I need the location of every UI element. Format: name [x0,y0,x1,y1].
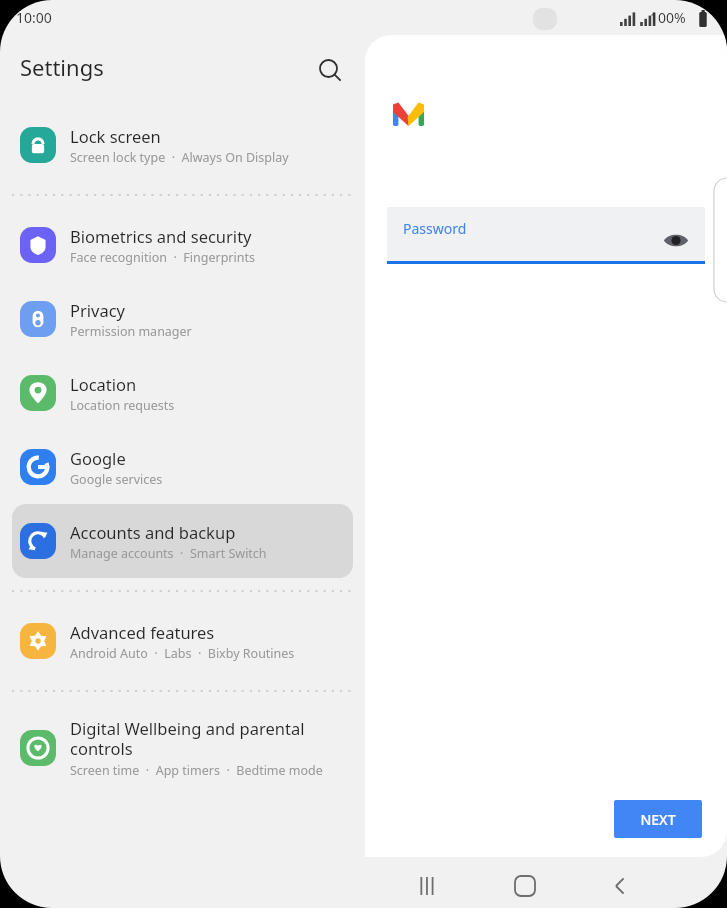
staticText: Permission manager [70,323,192,340]
button[interactable]: Accounts and backup [12,504,353,578]
staticText: Settings [20,52,104,82]
button[interactable]: Biometrics and security [12,208,353,282]
staticText: Digital Wellbeing and parental controls [70,717,345,760]
staticText: Google [70,447,126,469]
staticText: Face recognition · Fingerprints [70,249,255,266]
staticText: Advanced features [70,621,215,643]
staticText: NEXT [640,810,676,829]
button[interactable]: Home [501,862,549,908]
button[interactable]: Back [596,862,644,908]
button[interactable]: Location [12,356,353,430]
staticText: 100% [650,8,686,27]
staticText: Privacy [70,299,126,321]
button[interactable]: Advanced features [12,604,353,678]
staticText: Password [403,219,467,238]
staticText: Screen time · App timers · Bedtime mode [70,762,323,779]
button[interactable]: Show password [659,223,693,257]
staticText: Location requests [70,397,175,414]
button[interactable]: Digital Wellbeing and parental controls [12,704,353,792]
button[interactable]: Privacy [12,282,353,356]
button[interactable]: Lock screen [12,108,353,182]
button[interactable]: Recents [404,862,452,908]
button[interactable]: Search [308,48,352,92]
staticText: Manage accounts · Smart Switch [70,545,267,562]
staticText: Google services [70,471,163,488]
staticText: Biometrics and security [70,225,252,247]
staticText: Screen lock type · Always On Display [70,149,289,166]
staticText: Accounts and backup [70,521,236,543]
staticText: 10:00 [16,8,52,27]
button[interactable]: Password [387,207,705,261]
staticText: Location [70,373,137,395]
staticText: Lock screen [70,125,161,147]
staticText: Android Auto · Labs · Bixby Routines [70,645,295,662]
button[interactable]: Google [12,430,353,504]
button[interactable]: NEXT [614,800,702,838]
